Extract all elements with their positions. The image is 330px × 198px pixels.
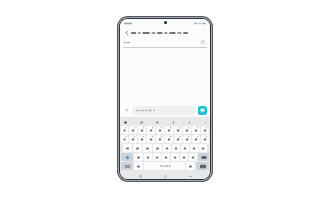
button[interactable]: Key: [162, 153, 170, 161]
button[interactable]: Shift: [121, 153, 133, 161]
button[interactable]: Key: [134, 153, 143, 161]
button[interactable]: Key: [123, 144, 132, 152]
button[interactable]: [132, 106, 196, 115]
button[interactable]: Key: [174, 135, 182, 143]
button[interactable]: Key: [190, 144, 198, 152]
button[interactable]: Key: [121, 126, 128, 134]
button[interactable]: Add recipient: [120, 37, 210, 47]
button[interactable]: Key: [201, 126, 209, 134]
button[interactable]: Key: [199, 144, 207, 152]
button[interactable]: Back: [123, 29, 130, 36]
button[interactable]: Space: [144, 162, 185, 170]
button[interactable]: Backspace: [198, 153, 209, 161]
button[interactable]: Key: [163, 144, 171, 152]
button[interactable]: Home: [162, 173, 168, 179]
button[interactable]: Key: [147, 126, 155, 134]
button[interactable]: Key: [171, 153, 179, 161]
button[interactable]: Key: [183, 126, 191, 134]
button[interactable]: Key: [138, 135, 146, 143]
button[interactable]: Key: [189, 153, 197, 161]
button[interactable]: Keyboard tool 6: [202, 119, 208, 125]
button[interactable]: Key: [134, 162, 143, 170]
button[interactable]: Key: [144, 153, 152, 161]
button[interactable]: Add recipient: [200, 39, 206, 45]
button[interactable]: Key: [133, 144, 142, 152]
button[interactable]: Enter: [196, 162, 209, 170]
button[interactable]: Key: [138, 126, 146, 134]
button[interactable]: Key: [129, 135, 137, 143]
button[interactable]: Key: [174, 126, 182, 134]
button[interactable]: Keyboard tool 1: [122, 119, 128, 125]
button[interactable]: Send message: [198, 106, 207, 115]
button[interactable]: Key: [143, 144, 152, 152]
button[interactable]: Key: [165, 126, 173, 134]
button[interactable]: Key: [172, 144, 180, 152]
button[interactable]: Add attachment: [123, 106, 131, 114]
button[interactable]: Key: [121, 135, 128, 143]
button[interactable]: Recents: [137, 173, 143, 179]
button[interactable]: Key: [147, 135, 155, 143]
button[interactable]: Key: [192, 126, 200, 134]
button[interactable]: Key: [165, 135, 173, 143]
button[interactable]: Key: [201, 135, 209, 143]
button[interactable]: Keyboard tool 4: [170, 119, 176, 125]
button[interactable]: Symbols: [121, 162, 133, 170]
button[interactable]: Key: [129, 126, 137, 134]
button[interactable]: Keyboard tool 2: [138, 119, 144, 125]
button[interactable]: Key: [156, 135, 164, 143]
button[interactable]: Key: [186, 162, 195, 170]
button[interactable]: Key: [156, 126, 164, 134]
button[interactable]: Key: [153, 144, 162, 152]
button[interactable]: Key: [183, 135, 191, 143]
button[interactable]: Key: [180, 153, 188, 161]
button[interactable]: Keyboard tool 5: [186, 119, 192, 125]
button[interactable]: Back: [187, 173, 193, 179]
button[interactable]: Key: [192, 135, 200, 143]
button[interactable]: Key: [181, 144, 189, 152]
button[interactable]: Key: [153, 153, 161, 161]
button[interactable]: Keyboard tool 3: [154, 119, 160, 125]
